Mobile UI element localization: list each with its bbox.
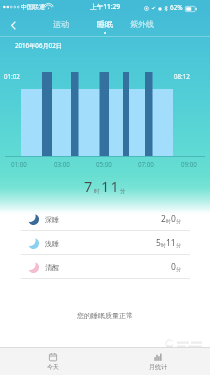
staticText: 2016年06月02日 — [15, 41, 62, 49]
staticText: 62% — [170, 3, 183, 12]
staticText: 03:00 — [54, 160, 70, 168]
staticText: 浅睡 — [45, 239, 59, 248]
staticText: 01:00 — [11, 160, 27, 168]
button[interactable]: 今天 — [0, 348, 105, 375]
staticText: 时 — [94, 188, 100, 195]
staticText: 09:00 — [181, 160, 197, 168]
staticText: 分 — [176, 242, 181, 248]
staticText: 分 — [120, 188, 126, 195]
button[interactable]: 深睡 — [0, 207, 210, 231]
button[interactable]: 运动 — [50, 14, 72, 36]
staticText: 时 — [161, 242, 166, 248]
staticText: 时 — [166, 218, 171, 224]
staticText: 运动 — [53, 19, 69, 29]
staticText: 分 — [176, 218, 181, 224]
staticText: 您的睡眠质量正常 — [0, 311, 210, 320]
staticText: 11 — [166, 237, 176, 249]
staticText: 深睡 — [45, 215, 59, 224]
staticText: 01:02 — [4, 72, 20, 80]
staticText: 今天 — [47, 363, 59, 371]
staticText: 5 — [156, 237, 161, 249]
staticText: 07:00 — [138, 160, 154, 168]
staticText: 清醒 — [45, 263, 59, 272]
staticText: 11 — [101, 176, 120, 196]
staticText: 分 — [176, 266, 181, 272]
button[interactable]: 紫外线 — [127, 14, 157, 36]
button[interactable]: 浅睡 — [0, 231, 210, 255]
staticText: 上午11:29 — [0, 2, 210, 11]
staticText: 紫外线 — [130, 19, 154, 29]
staticText: 2 — [161, 213, 166, 225]
button[interactable]: 清醒 — [0, 255, 210, 279]
staticText: 05:00 — [96, 160, 112, 168]
staticText: 中国联通 — [21, 3, 45, 11]
staticText: 月统计 — [149, 363, 167, 371]
button[interactable]: Back — [0, 14, 26, 36]
staticText: 08:12 — [174, 72, 190, 80]
staticText: 0 — [171, 213, 176, 225]
button[interactable]: 月统计 — [105, 348, 210, 375]
button[interactable]: 睡眠 — [94, 14, 116, 36]
staticText: 睡眠 — [97, 19, 113, 29]
staticText: 0 — [171, 261, 176, 273]
staticText: 7 — [84, 176, 94, 196]
